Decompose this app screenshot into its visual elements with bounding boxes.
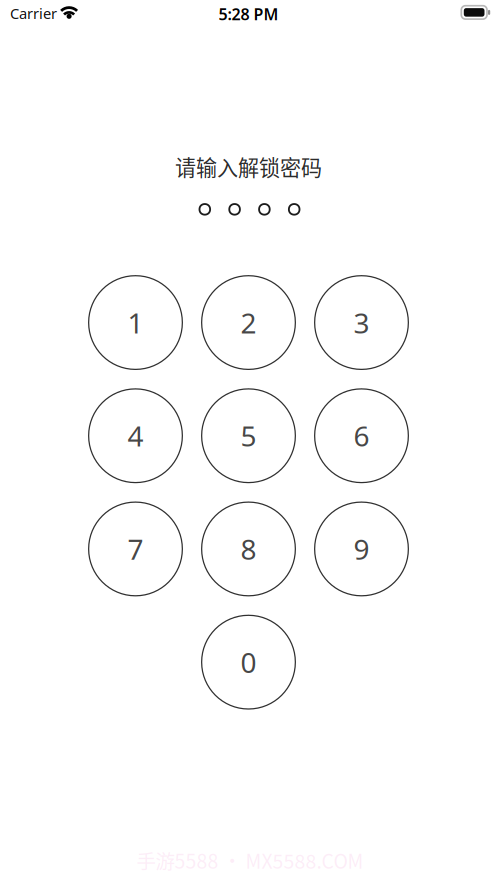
staticText: 5:28 PM [218, 3, 278, 25]
button[interactable]: 4 [89, 389, 182, 483]
staticText: 8 [240, 530, 256, 568]
staticText: Carrier [10, 4, 57, 23]
staticText: 6 [353, 417, 369, 454]
staticText: 0 [240, 644, 256, 681]
button[interactable]: 5 [202, 389, 295, 483]
staticText: 2 [240, 304, 256, 341]
button[interactable]: 9 [315, 502, 408, 596]
button[interactable]: 1 [89, 276, 182, 369]
button[interactable]: 0 [202, 615, 295, 709]
staticText: 4 [127, 417, 143, 454]
staticText: 手游5588 · MX5588.COM [136, 846, 363, 874]
button[interactable]: 7 [89, 502, 182, 596]
staticText: 3 [353, 304, 369, 341]
staticText: 1 [127, 304, 143, 341]
button[interactable]: 8 [202, 502, 295, 596]
staticText: 5 [240, 417, 256, 454]
staticText: 请输入解锁密码 [175, 151, 322, 182]
button[interactable]: 6 [315, 389, 408, 483]
staticText: 7 [127, 530, 143, 568]
button[interactable]: 2 [202, 276, 295, 369]
button[interactable]: 3 [315, 276, 408, 369]
staticText: 9 [353, 530, 369, 568]
